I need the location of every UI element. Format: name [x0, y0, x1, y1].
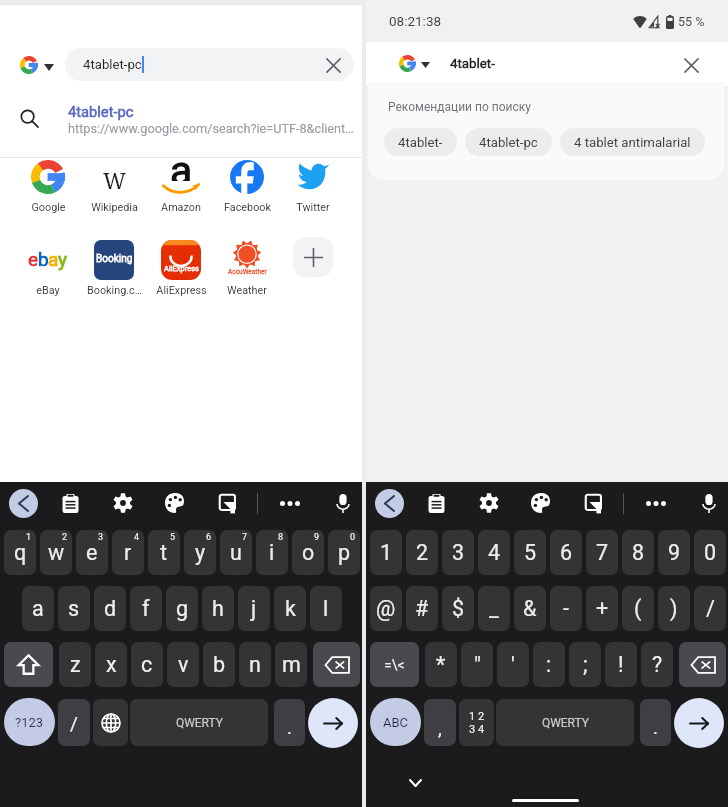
button[interactable]: 4tablet-: [384, 128, 457, 156]
button[interactable]: k: [274, 586, 306, 631]
button[interactable]: Backspace: [679, 642, 726, 687]
button[interactable]: Booking: [81, 239, 147, 297]
button[interactable]: 5: [514, 530, 546, 575]
button[interactable]: p: [328, 530, 360, 575]
button[interactable]: y: [184, 530, 216, 575]
button[interactable]: Google: [15, 156, 81, 214]
button[interactable]: d: [94, 586, 126, 631]
button[interactable]: q: [4, 530, 36, 575]
button[interactable]: x: [95, 642, 127, 687]
button[interactable]: AliExpress: [148, 239, 214, 297]
button[interactable]: $: [442, 586, 474, 631]
button[interactable]: w: [40, 530, 72, 575]
button[interactable]: s: [58, 586, 90, 631]
button[interactable]: z: [59, 642, 91, 687]
button[interactable]: t: [148, 530, 180, 575]
button[interactable]: Resize: [578, 487, 610, 519]
button[interactable]: o: [292, 530, 324, 575]
button[interactable]: 8: [622, 530, 654, 575]
button[interactable]: f: [130, 586, 162, 631]
button[interactable]: Enter: [308, 698, 358, 748]
button[interactable]: Hide keyboard: [404, 771, 427, 794]
button[interactable]: n: [239, 642, 271, 687]
button[interactable]: ABC: [370, 698, 421, 746]
button[interactable]: 4tablet-pc: [465, 128, 552, 156]
button[interactable]: Clear: [320, 52, 346, 78]
button[interactable]: 6: [550, 530, 582, 575]
button[interactable]: Clipboard: [54, 487, 86, 519]
button[interactable]: 4: [478, 530, 510, 575]
button[interactable]: e: [76, 530, 108, 575]
button[interactable]: [4, 642, 53, 687]
button[interactable]: Settings: [107, 487, 139, 519]
button[interactable]: ': [497, 642, 529, 687]
button[interactable]: .: [640, 699, 671, 746]
button[interactable]: ?: [641, 642, 673, 687]
button[interactable]: 3: [442, 530, 474, 575]
button[interactable]: e: [15, 239, 81, 297]
button[interactable]: 1: [370, 530, 402, 575]
button[interactable]: v: [167, 642, 199, 687]
button[interactable]: Numbers: [459, 699, 494, 746]
button[interactable]: _: [478, 586, 510, 631]
button[interactable]: /: [58, 699, 90, 746]
button[interactable]: Theme: [159, 487, 191, 519]
button[interactable]: b: [203, 642, 235, 687]
button[interactable]: a: [148, 156, 214, 214]
button[interactable]: Add shortcut: [293, 237, 333, 277]
button[interactable]: ": [461, 642, 493, 687]
button[interactable]: Back: [9, 489, 38, 518]
button[interactable]: Voice input: [693, 487, 725, 519]
button[interactable]: 4 tablet antimalarial: [560, 128, 705, 156]
button[interactable]: Facebook: [214, 156, 280, 214]
button[interactable]: /: [694, 586, 726, 631]
button[interactable]: !: [605, 642, 637, 687]
button[interactable]: m: [275, 642, 307, 687]
button[interactable]: g: [166, 586, 198, 631]
button[interactable]: Backspace: [313, 642, 360, 687]
button[interactable]: More options: [640, 487, 672, 519]
button[interactable]: -: [550, 586, 582, 631]
button[interactable]: 7: [586, 530, 618, 575]
button[interactable]: Twitter: [280, 156, 346, 214]
button[interactable]: Voice input: [327, 487, 359, 519]
button[interactable]: (: [622, 586, 654, 631]
button[interactable]: Settings: [473, 487, 505, 519]
button[interactable]: .: [274, 699, 305, 746]
button[interactable]: 4tablet-pc: [0, 90, 362, 148]
button[interactable]: +: [586, 586, 618, 631]
button[interactable]: ;: [569, 642, 601, 687]
button[interactable]: 4tablet-pc: [65, 48, 354, 81]
button[interactable]: l: [310, 586, 342, 631]
button[interactable]: ): [658, 586, 690, 631]
button[interactable]: @: [370, 586, 402, 631]
button[interactable]: 2: [406, 530, 438, 575]
button[interactable]: Language: [93, 699, 128, 746]
button[interactable]: :: [533, 642, 565, 687]
button[interactable]: Enter: [674, 698, 724, 748]
button[interactable]: a: [22, 586, 54, 631]
button[interactable]: c: [131, 642, 163, 687]
button[interactable]: Back: [375, 489, 404, 518]
button[interactable]: Clipboard: [420, 487, 452, 519]
button[interactable]: *: [425, 642, 457, 687]
button[interactable]: r: [112, 530, 144, 575]
button[interactable]: ,: [424, 699, 456, 746]
button[interactable]: #: [406, 586, 438, 631]
button[interactable]: &: [514, 586, 546, 631]
button[interactable]: u: [220, 530, 252, 575]
button[interactable]: ?123: [4, 698, 55, 746]
button[interactable]: Resize: [212, 487, 244, 519]
button[interactable]: Theme: [525, 487, 557, 519]
button[interactable]: AccuWeather: [214, 239, 280, 297]
button[interactable]: More options: [274, 487, 306, 519]
button[interactable]: j: [238, 586, 270, 631]
button[interactable]: i: [256, 530, 288, 575]
button[interactable]: Close: [678, 52, 704, 78]
button[interactable]: QWERTY: [130, 699, 268, 746]
button[interactable]: QWERTY: [496, 699, 634, 746]
button[interactable]: 9: [658, 530, 690, 575]
button[interactable]: W: [81, 156, 147, 214]
button[interactable]: 0: [694, 530, 726, 575]
button[interactable]: =\<: [370, 642, 419, 687]
